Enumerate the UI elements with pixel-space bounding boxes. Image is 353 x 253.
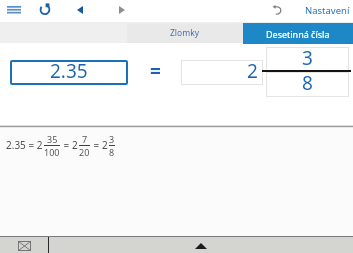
button[interactable]: Mail <box>0 237 48 253</box>
staticText: Desetinná čísla <box>266 28 330 40</box>
button[interactable]: Expand <box>49 237 353 253</box>
staticText: = <box>150 58 161 83</box>
staticText: Nastavení <box>305 4 350 17</box>
staticText: 20 <box>79 146 90 158</box>
button[interactable]: 2.35 <box>10 60 128 85</box>
button[interactable]: Undo <box>267 0 287 21</box>
staticText: 2 <box>247 58 258 83</box>
staticText: = 2 <box>61 138 78 152</box>
button[interactable]: Nastavení <box>305 0 350 20</box>
button[interactable]: 2 <box>181 60 263 85</box>
staticText: 100 <box>44 146 60 158</box>
button[interactable]: Refresh <box>35 0 55 20</box>
staticText: 2.35 = 2 <box>6 138 43 152</box>
staticText: 7 <box>82 133 88 145</box>
button[interactable]: Back <box>70 0 90 21</box>
staticText: 35 <box>47 133 58 145</box>
button[interactable]: Forward <box>112 0 132 21</box>
staticText: 3 <box>109 133 115 145</box>
button[interactable]: 3 <box>266 47 349 71</box>
staticText: 2.35 <box>50 58 88 83</box>
button[interactable]: Zlomky <box>127 23 243 43</box>
staticText: 8 <box>302 70 313 95</box>
staticText: 3 <box>302 45 313 69</box>
button[interactable]: Desetinná čísla <box>243 23 353 44</box>
staticText: = 2 <box>91 138 108 152</box>
button[interactable]: Menu <box>2 0 26 19</box>
staticText: 8 <box>109 146 115 158</box>
staticText: Zlomky <box>170 27 200 39</box>
button[interactable]: 8 <box>266 72 349 97</box>
